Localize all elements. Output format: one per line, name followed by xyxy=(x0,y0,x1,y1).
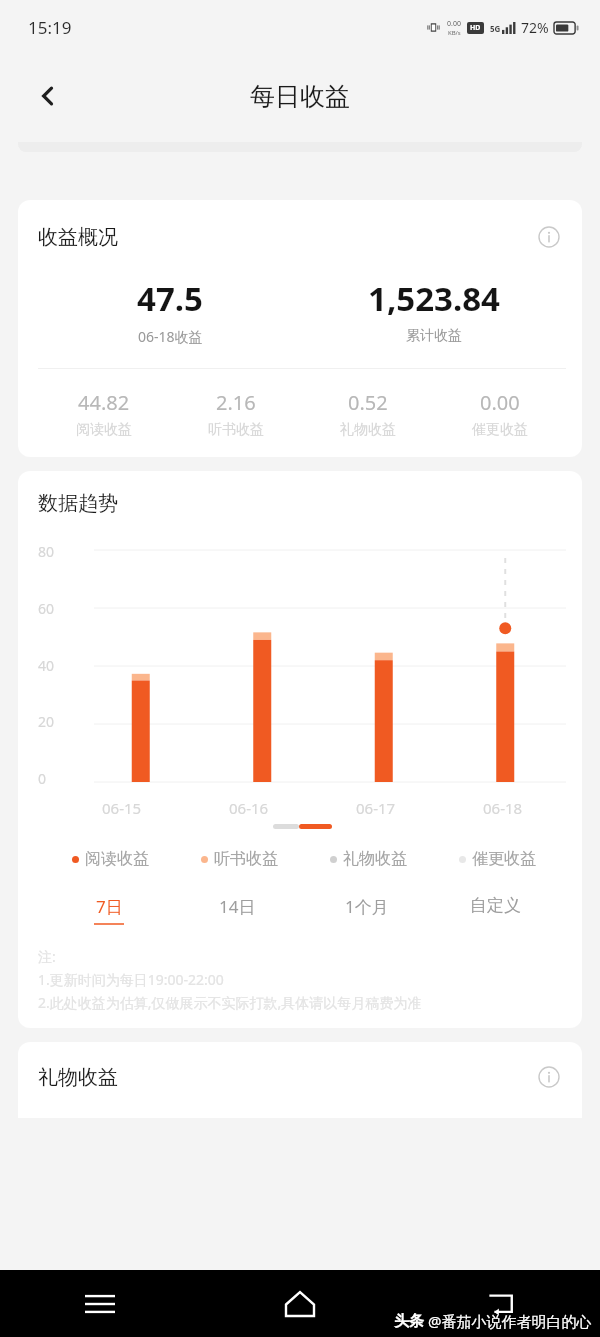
staticText: 20 xyxy=(38,712,55,731)
staticText: 0.00 xyxy=(480,389,520,416)
staticText: 阅读收益 xyxy=(76,421,132,439)
button[interactable]: 7日 xyxy=(44,895,173,925)
button[interactable]: 14日 xyxy=(173,895,302,925)
staticText: 72% xyxy=(521,18,549,37)
button[interactable]: 自定义 xyxy=(431,895,560,923)
staticText: 44.82 xyxy=(78,389,130,416)
staticText: 数据趋势 xyxy=(38,491,118,516)
button[interactable]: Recent apps xyxy=(0,1270,200,1337)
button[interactable]: 1个月 xyxy=(302,895,431,925)
staticText: 06-18收益 xyxy=(138,327,203,346)
staticText: 注: xyxy=(38,947,56,966)
staticText: 礼物收益 xyxy=(38,1065,118,1090)
staticText: 80 xyxy=(38,542,55,561)
button[interactable]: 阅读收益 xyxy=(46,849,175,869)
staticText: 每日收益 xyxy=(250,81,350,112)
staticText: 催更收益 xyxy=(472,421,528,439)
staticText: 头条 xyxy=(394,1312,424,1331)
button[interactable]: Info xyxy=(532,220,566,254)
staticText: 听书收益 xyxy=(208,421,264,439)
staticText: KB/s xyxy=(448,29,461,37)
staticText: 7日 xyxy=(96,895,123,918)
staticText: 47.5 xyxy=(137,276,203,321)
staticText: 14日 xyxy=(219,895,256,918)
button[interactable]: 听书收益 xyxy=(175,849,304,869)
staticText: 1,523.84 xyxy=(368,276,500,321)
button[interactable]: Info xyxy=(532,1060,566,1094)
staticText: 催更收益 xyxy=(472,849,536,869)
staticText: 5G xyxy=(490,23,501,34)
staticText: 60 xyxy=(38,599,55,618)
staticText: 15:19 xyxy=(28,16,72,39)
staticText: 0.52 xyxy=(348,389,388,416)
staticText: 阅读收益 xyxy=(85,849,149,869)
staticText: HD xyxy=(470,23,481,33)
staticText: 06-15 xyxy=(102,798,142,818)
staticText: 累计收益 xyxy=(406,327,462,345)
staticText: 礼物收益 xyxy=(340,421,396,439)
staticText: @番茄小说作者明白的心 xyxy=(428,1311,592,1331)
staticText: 06-16 xyxy=(229,798,269,818)
staticText: 2.16 xyxy=(216,389,256,416)
staticText: 40 xyxy=(38,656,55,675)
staticText: 0 xyxy=(38,769,47,788)
button[interactable]: Back xyxy=(22,70,74,122)
button[interactable]: Back xyxy=(400,1270,600,1337)
staticText: 听书收益 xyxy=(214,849,278,869)
staticText: 收益概况 xyxy=(38,225,118,250)
staticText: 1.更新时间为每日19:00-22:00 xyxy=(38,970,224,989)
button[interactable]: Home xyxy=(200,1270,400,1337)
staticText: 1个月 xyxy=(345,895,389,918)
staticText: 自定义 xyxy=(470,895,521,916)
staticText: 0.00 xyxy=(447,19,461,29)
staticText: 06-18 xyxy=(483,798,523,818)
button[interactable]: 催更收益 xyxy=(433,849,562,869)
staticText: 礼物收益 xyxy=(343,849,407,869)
staticText: 06-17 xyxy=(356,798,396,818)
button[interactable]: 礼物收益 xyxy=(304,849,433,869)
staticText: 2.此处收益为估算,仅做展示不实际打款,具体请以每月稿费为准 xyxy=(38,993,422,1012)
